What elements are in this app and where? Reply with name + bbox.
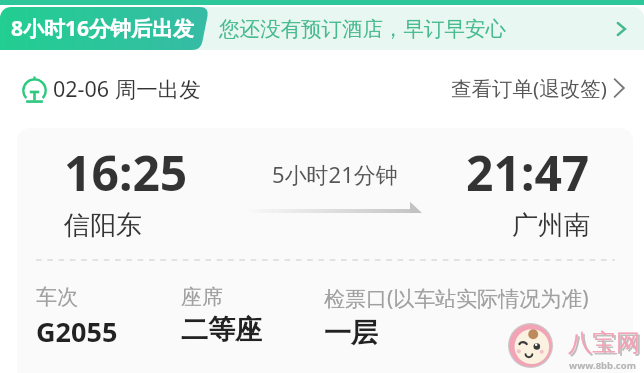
staticText: 座席	[181, 284, 223, 310]
staticText: G2055	[36, 313, 118, 350]
staticText: 查看订单(退改签)	[451, 74, 607, 102]
staticText: 一层	[324, 316, 378, 350]
staticText: 八宝网	[570, 330, 642, 360]
staticText: 信阳东	[64, 209, 142, 242]
staticText: 您还没有预订酒店，早订早安心	[219, 16, 506, 42]
staticText: www.8bb.com	[569, 359, 636, 372]
staticText: 广州南	[512, 209, 590, 242]
button[interactable]: 8小时16分钟后出发	[0, 7, 644, 50]
staticText: 5小时21分钟	[272, 159, 398, 189]
staticText: 16:25	[64, 140, 188, 205]
button[interactable]: 查看更多	[608, 16, 634, 42]
staticText: 检票口(以车站实际情况为准)	[324, 284, 589, 313]
staticText: 21:47	[466, 140, 590, 205]
staticText: 02-06 周一出发	[53, 74, 201, 103]
staticText: 八宝网	[568, 328, 640, 358]
button[interactable]: 查看订单(退改签)	[445, 68, 644, 108]
staticText: 车次	[36, 284, 78, 310]
staticText: 8小时16分钟后出发	[11, 14, 195, 43]
staticText: 二等座	[181, 313, 262, 347]
